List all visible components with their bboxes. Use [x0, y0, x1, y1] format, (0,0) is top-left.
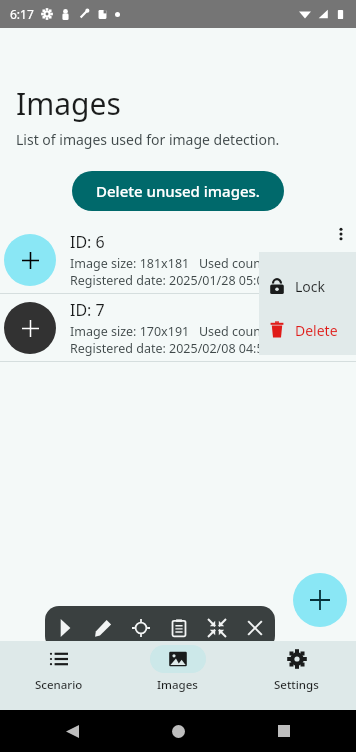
button[interactable]: Back — [60, 719, 84, 743]
button[interactable]: More options — [328, 221, 354, 247]
button[interactable]: Edit — [85, 610, 121, 646]
staticText: Registered date: 2025/01/28 05:01:14 — [70, 272, 289, 289]
button[interactable]: ID: 7 — [0, 294, 356, 361]
staticText: Image size: 181x181 Used count: 1 — [70, 255, 280, 272]
button[interactable]: Clipboard — [161, 610, 197, 646]
button[interactable]: Collapse — [199, 610, 235, 646]
button[interactable]: Delete unused images. — [72, 171, 284, 211]
button[interactable]: Recents — [272, 719, 296, 743]
button[interactable]: Lock — [259, 268, 356, 304]
staticText: Settings — [274, 677, 319, 693]
staticText: Delete unused images. — [96, 181, 260, 201]
button[interactable]: Target — [123, 610, 159, 646]
button[interactable]: ID: 6 — [0, 226, 356, 293]
staticText: List of images used for image detection. — [16, 130, 280, 149]
button[interactable]: Home — [166, 719, 190, 743]
staticText: Scenario — [35, 677, 83, 693]
staticText: Image size: 170x191 Used count: 0 — [70, 323, 280, 340]
staticText: Images — [16, 83, 121, 124]
button[interactable]: Settings — [237, 641, 356, 710]
button[interactable]: Images — [118, 641, 237, 710]
button[interactable]: Close — [237, 610, 273, 646]
staticText: Delete — [295, 321, 338, 340]
button[interactable]: Play — [47, 610, 83, 646]
staticText: Registered date: 2025/02/08 04:53:07 — [70, 340, 289, 357]
staticText: 6:17 — [10, 6, 34, 22]
button[interactable]: Delete — [259, 312, 356, 348]
button[interactable]: Add image — [293, 573, 347, 627]
button[interactable]: Scenario — [0, 641, 118, 710]
staticText: Lock — [295, 277, 326, 296]
staticText: ID: 6 — [70, 231, 105, 253]
staticText: ID: 7 — [70, 299, 105, 321]
staticText: Images — [157, 677, 198, 693]
